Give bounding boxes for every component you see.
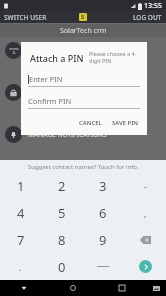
button[interactable]: Switch keyboard — [146, 280, 166, 296]
staticText: 8 — [58, 231, 66, 249]
button[interactable]: Space — [82, 253, 124, 280]
button[interactable]: Suggest contact names? Touch for info. — [0, 160, 166, 173]
staticText: MANAGE NOTIFICATIONS — [28, 130, 107, 139]
staticText: www & — [9, 46, 19, 55]
staticText: 0 — [58, 258, 66, 276]
staticText: , — [144, 207, 147, 219]
button[interactable]: Back — [0, 280, 48, 296]
button[interactable]: 8 — [41, 226, 82, 253]
button[interactable]: . — [0, 253, 41, 280]
button[interactable]: 0 — [41, 253, 82, 280]
button[interactable]: Confirm PIN — [28, 96, 140, 109]
staticText: SWITCH USER — [4, 13, 47, 22]
button[interactable]: SAVE PIN — [110, 117, 141, 129]
staticText: 3 — [99, 177, 107, 195]
button[interactable]: 7 — [0, 226, 41, 253]
staticText: Please choose a 4-digit PIN — [89, 50, 140, 64]
staticText: 6 — [99, 204, 107, 222]
button[interactable]: 6 — [82, 199, 124, 226]
button[interactable]: - — [124, 173, 166, 199]
button[interactable]: CANCEL — [77, 117, 104, 129]
staticText: 7 — [17, 231, 25, 249]
staticText: LOG OUT — [133, 13, 162, 22]
button[interactable]: , — [124, 199, 166, 226]
staticText: S — [81, 13, 85, 21]
button[interactable]: MANAGE NOTIFICATIONS — [0, 124, 166, 144]
button[interactable]: 5 — [41, 199, 82, 226]
staticText: SAVE PIN — [112, 119, 139, 127]
button[interactable]: LOG OUT — [129, 11, 166, 23]
staticText: 1 — [17, 177, 25, 195]
staticText: . — [19, 261, 22, 273]
button[interactable]: PRIVACY — [0, 82, 166, 102]
button[interactable]: 1 — [0, 173, 41, 199]
staticText: SolarTech crm — [60, 26, 107, 36]
staticText: Confirm PIN — [28, 96, 72, 106]
button[interactable]: Delete — [124, 226, 166, 253]
button[interactable]: Home — [48, 280, 97, 296]
button[interactable]: Enter — [124, 253, 166, 280]
staticText: 4 — [17, 204, 25, 222]
button[interactable]: SWITCH USER — [0, 11, 51, 23]
staticText: 2 — [58, 177, 66, 195]
staticText: Enter PIN — [29, 74, 63, 84]
staticText: Attach a PIN — [30, 52, 84, 64]
button[interactable]: 2 — [41, 173, 82, 199]
staticText: Suggest contact names? Touch for info. — [28, 163, 139, 171]
staticText: CANCEL — [79, 119, 102, 127]
staticText: 9 — [99, 231, 107, 249]
staticText: 13:55 — [144, 1, 162, 11]
button[interactable]: 4 — [0, 199, 41, 226]
button[interactable]: App badge — [79, 13, 87, 21]
staticText: 5 — [58, 204, 66, 222]
button[interactable]: Enter PIN — [28, 74, 140, 87]
button[interactable]: 3 — [82, 173, 124, 199]
button[interactable]: 9 — [82, 226, 124, 253]
button[interactable]: www & — [0, 40, 166, 60]
staticText: - — [144, 180, 147, 192]
button[interactable]: Recents — [97, 280, 146, 296]
